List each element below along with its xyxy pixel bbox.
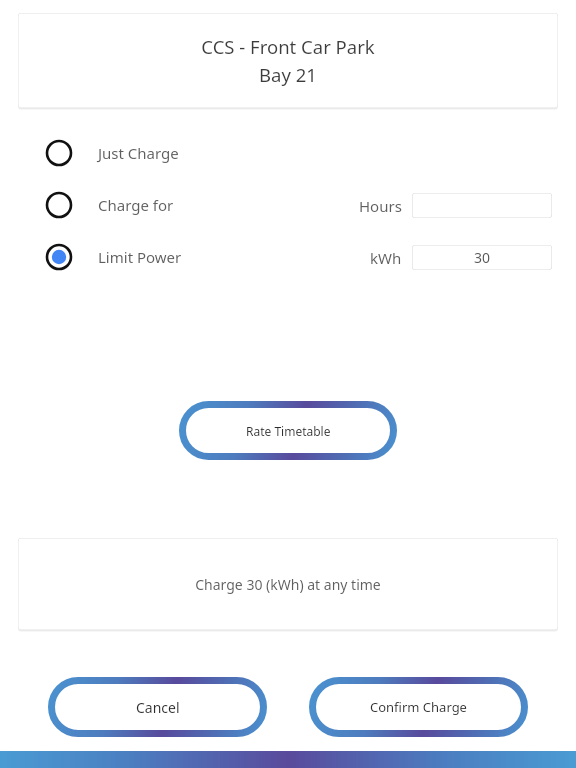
staticText: Bay 21 xyxy=(18,62,558,87)
staticText: kWh xyxy=(370,248,402,268)
staticText: Cancel xyxy=(136,698,180,717)
button[interactable]: Limit Power xyxy=(0,231,300,283)
button[interactable]: Charge for xyxy=(0,179,300,231)
staticText: Charge for xyxy=(98,195,174,215)
button[interactable]: kWh input xyxy=(412,245,552,270)
staticText: Rate Timetable xyxy=(246,423,331,439)
staticText: Charge 30 (kWh) at any time xyxy=(18,575,558,594)
staticText: Just Charge xyxy=(98,143,179,163)
staticText: Limit Power xyxy=(98,247,182,267)
button[interactable]: Confirm Charge xyxy=(309,677,528,737)
button[interactable]: Hours input xyxy=(412,193,552,218)
button[interactable]: Cancel xyxy=(48,677,267,737)
staticText: 30 xyxy=(474,248,491,267)
button[interactable]: Just Charge xyxy=(0,127,300,179)
staticText: CCS - Front Car Park xyxy=(18,34,558,59)
staticText: Hours xyxy=(359,196,402,216)
button[interactable]: Rate Timetable xyxy=(179,401,397,460)
staticText: Confirm Charge xyxy=(370,698,467,716)
